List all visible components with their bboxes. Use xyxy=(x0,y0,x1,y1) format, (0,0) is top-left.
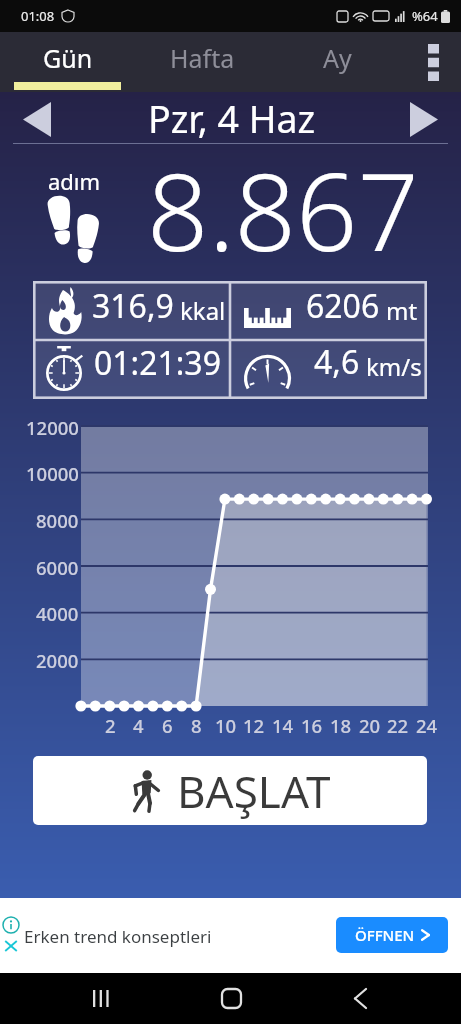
staticText: 12000 xyxy=(26,415,79,440)
button[interactable]: Back xyxy=(332,973,388,1024)
button[interactable]: Next day xyxy=(409,101,439,137)
button[interactable]: Home xyxy=(203,973,259,1024)
staticText: 8 xyxy=(191,713,202,738)
button[interactable]: Recent apps xyxy=(73,973,129,1024)
button[interactable]: BAŞLAT xyxy=(33,756,427,825)
staticText: 6206 xyxy=(306,284,380,328)
button[interactable]: 4,6 xyxy=(230,340,427,384)
staticText: 4,6 xyxy=(314,340,360,384)
staticText: 16 xyxy=(301,713,323,738)
staticText: 2 xyxy=(105,713,116,738)
staticText: Gün xyxy=(43,41,93,75)
staticText: Pzr, 4 Haz xyxy=(148,93,316,144)
staticText: 6000 xyxy=(36,555,79,580)
staticText: 20 xyxy=(359,713,381,738)
staticText: %64 xyxy=(412,7,438,25)
button[interactable]: Hafta xyxy=(135,32,270,92)
staticText: Ay xyxy=(323,41,352,75)
staticText: 14 xyxy=(272,713,294,738)
staticText: 10 xyxy=(215,713,237,738)
button[interactable]: ÖFFNEN xyxy=(336,917,448,953)
button[interactable]: 316,9 xyxy=(33,281,230,331)
staticText: 6 xyxy=(162,713,173,738)
button[interactable]: Previous day xyxy=(22,101,52,137)
staticText: mt xyxy=(386,294,418,327)
staticText: BAŞLAT xyxy=(177,761,331,821)
staticText: adım xyxy=(48,166,101,196)
staticText: kkal xyxy=(180,294,226,327)
staticText: 4000 xyxy=(36,601,79,626)
staticText: 01:08 xyxy=(21,7,55,25)
staticText: 22 xyxy=(387,713,409,738)
staticText: 01:21:39 xyxy=(94,341,221,385)
button[interactable]: 01:21:39 xyxy=(33,340,230,385)
staticText: 10000 xyxy=(26,461,79,486)
staticText: 8.867 xyxy=(147,136,419,261)
button[interactable]: 6206 xyxy=(230,281,427,331)
staticText: 24 xyxy=(416,713,438,738)
staticText: 2000 xyxy=(36,648,79,673)
staticText: ÖFFNEN xyxy=(355,925,415,945)
staticText: 18 xyxy=(330,713,352,738)
button[interactable]: Gün xyxy=(0,32,135,92)
button[interactable]: Ay xyxy=(270,32,405,92)
staticText: 316,9 xyxy=(92,284,174,328)
staticText: Hafta xyxy=(170,41,235,75)
staticText: 4 xyxy=(133,713,144,738)
button[interactable]: More options xyxy=(405,32,461,92)
staticText: km/s xyxy=(366,350,422,383)
staticText: Erken trend konseptleri xyxy=(24,925,212,948)
staticText: 8000 xyxy=(36,508,79,533)
staticText: 12 xyxy=(243,713,265,738)
